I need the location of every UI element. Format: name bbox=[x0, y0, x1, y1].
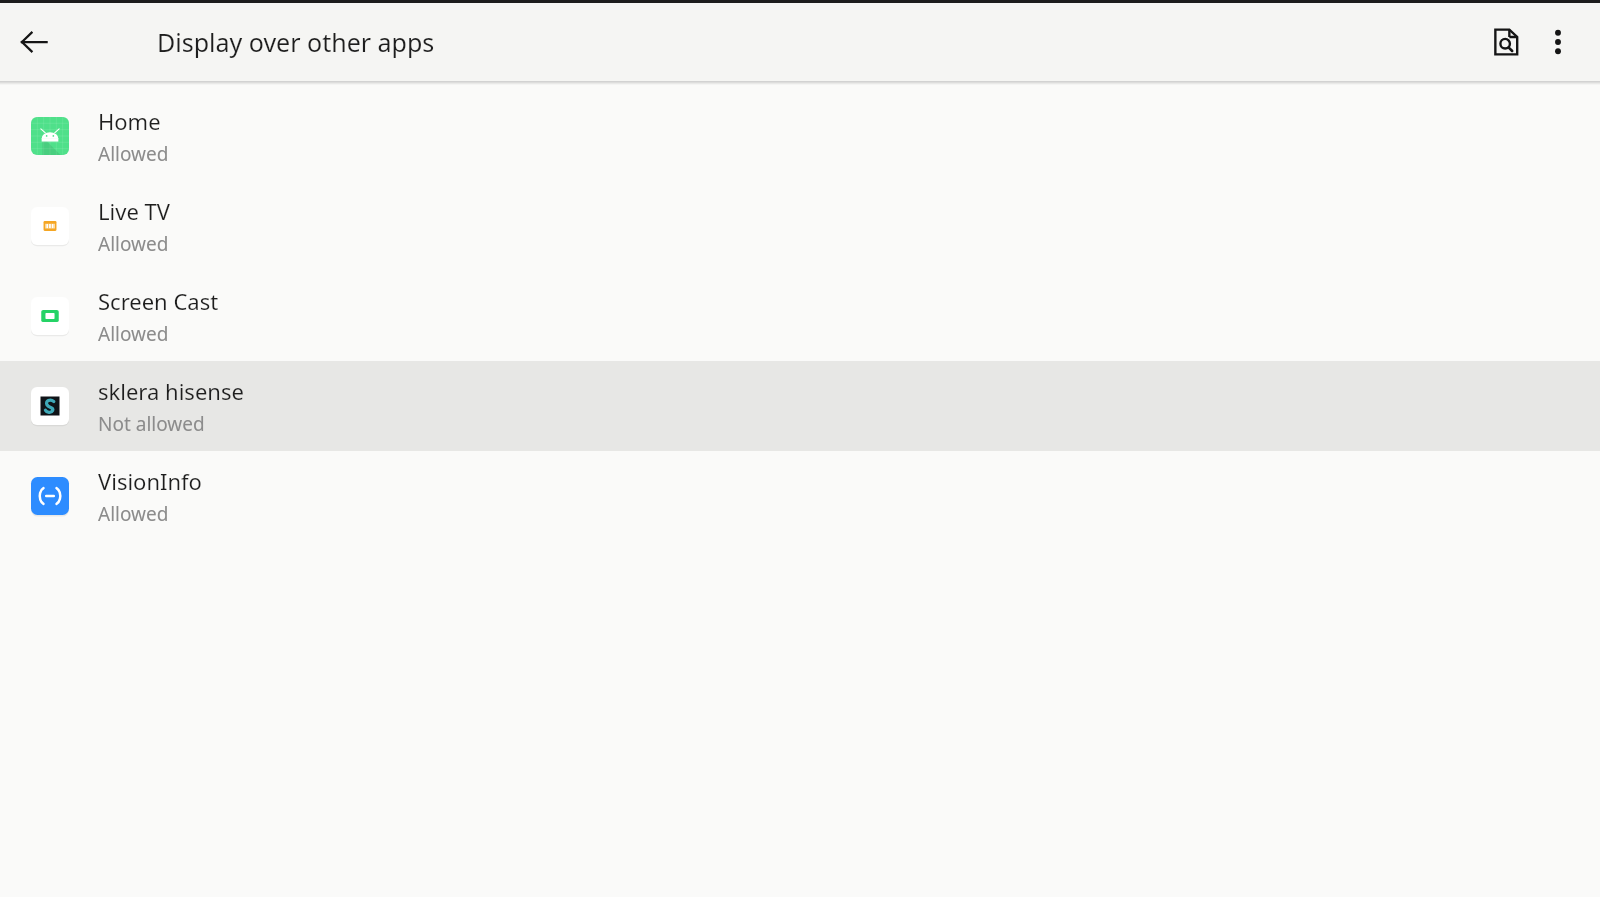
staticText: Allowed bbox=[98, 231, 169, 257]
staticText: Not allowed bbox=[98, 411, 205, 437]
button[interactable]: Screen Cast bbox=[0, 271, 1600, 361]
staticText: Display over other apps bbox=[157, 25, 435, 59]
button[interactable]: Live TV bbox=[0, 181, 1600, 271]
button[interactable]: VisionInfo bbox=[0, 451, 1600, 541]
staticText: Live TV bbox=[98, 196, 170, 226]
staticText: Allowed bbox=[98, 141, 169, 167]
button[interactable]: More options bbox=[1532, 16, 1584, 68]
button[interactable]: sklera hisense bbox=[0, 361, 1600, 451]
button[interactable]: Find in page bbox=[1480, 16, 1532, 68]
button[interactable]: Back bbox=[9, 17, 59, 67]
staticText: VisionInfo bbox=[98, 466, 202, 496]
button[interactable]: Home bbox=[0, 91, 1600, 181]
staticText: sklera hisense bbox=[98, 376, 244, 406]
staticText: Screen Cast bbox=[98, 286, 219, 316]
staticText: Allowed bbox=[98, 321, 169, 347]
staticText: Allowed bbox=[98, 501, 169, 527]
staticText: Home bbox=[98, 106, 161, 136]
